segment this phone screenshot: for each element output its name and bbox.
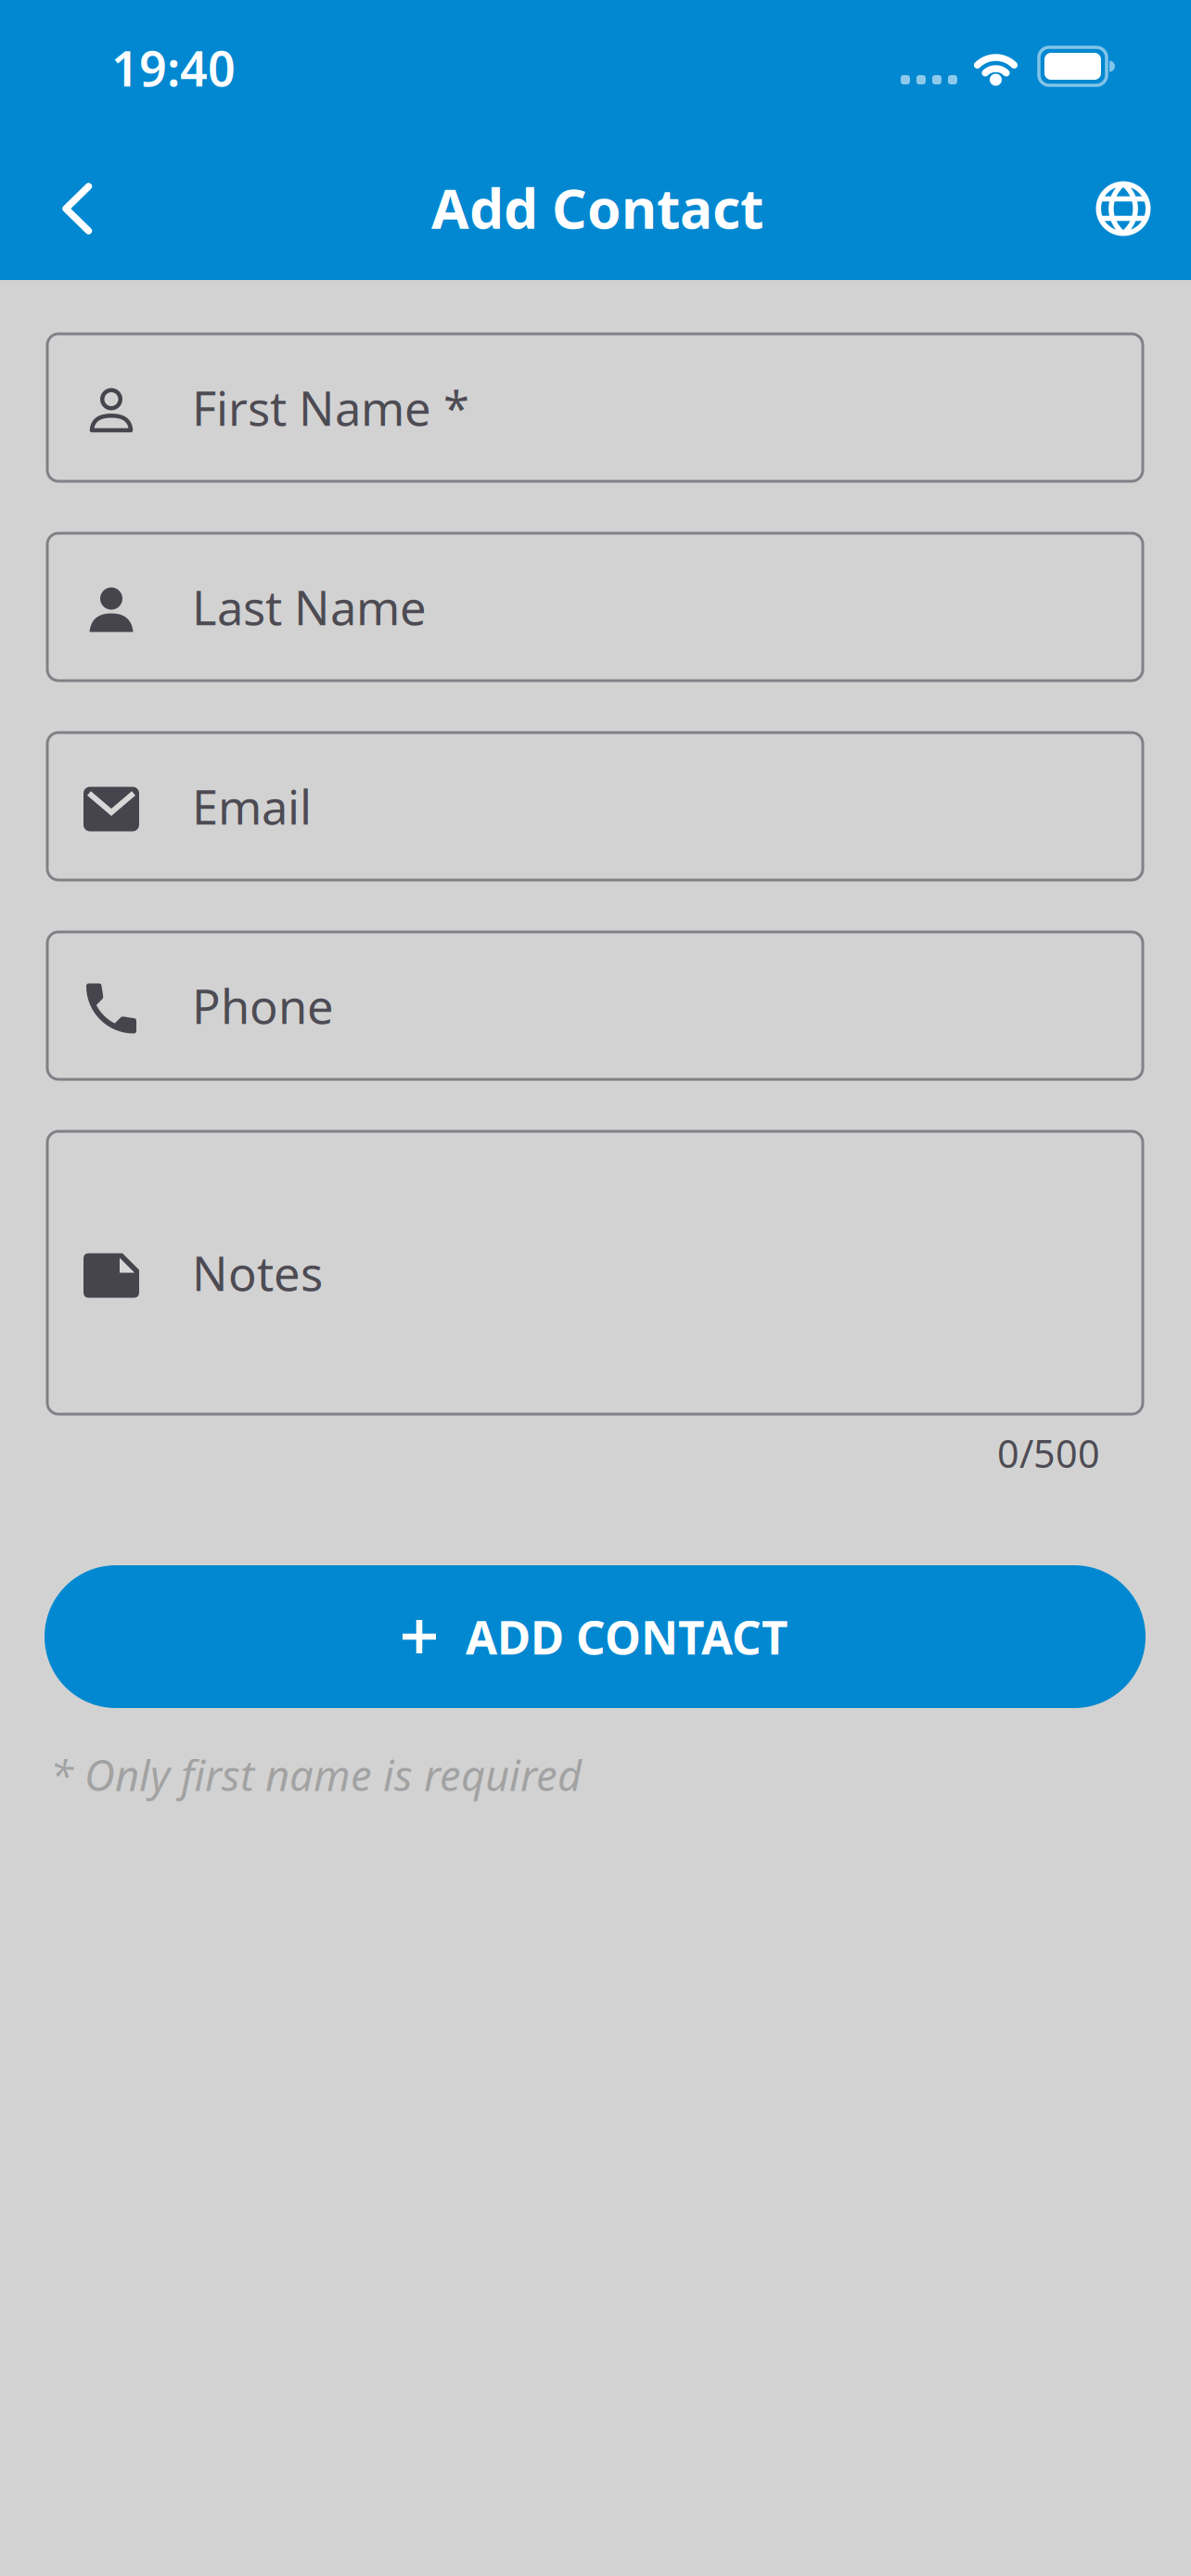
button[interactable]: Language	[1095, 180, 1152, 237]
button[interactable]: Phone	[47, 932, 1143, 1079]
button[interactable]: First Name *	[47, 334, 1143, 481]
staticText: 19:40	[111, 36, 236, 100]
staticText: * Only first name is required	[50, 1747, 582, 1803]
staticText: Phone	[192, 974, 334, 1037]
staticText: Email	[192, 775, 312, 838]
button[interactable]: Last Name	[47, 533, 1143, 681]
button[interactable]: ADD CONTACT	[45, 1565, 1146, 1708]
staticText: ADD CONTACT	[466, 1606, 788, 1667]
button[interactable]: Back	[46, 178, 108, 239]
staticText: Last Name	[192, 576, 427, 638]
button[interactable]: Notes	[47, 1131, 1143, 1414]
staticText: Notes	[192, 1242, 323, 1304]
staticText: First Name *	[192, 376, 469, 439]
button[interactable]: Email	[47, 733, 1143, 880]
staticText: Add Contact	[431, 172, 763, 244]
staticText: 0/500	[997, 1428, 1100, 1479]
